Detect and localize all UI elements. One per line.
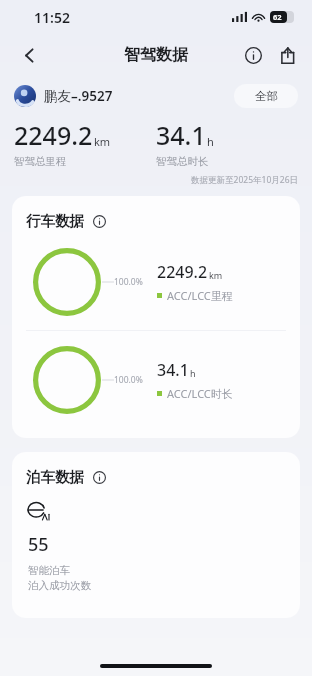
staticText: 11:52 xyxy=(34,8,70,27)
staticText: 55 xyxy=(28,532,49,557)
button[interactable]: 泊车数据 说明 xyxy=(89,467,109,487)
staticText: 2249.2 xyxy=(157,261,208,283)
staticText: 智驾总里程 xyxy=(14,155,67,168)
staticText: 智能泊车 xyxy=(28,564,70,577)
staticText: 智驾数据 xyxy=(124,45,188,65)
staticText: 数据更新至2025年10月26日 xyxy=(0,174,298,186)
staticText: 鹏友–.9527 xyxy=(44,87,113,105)
staticText: 2249.2 xyxy=(14,118,93,152)
button[interactable]: 全部 xyxy=(234,84,298,108)
staticText: h xyxy=(207,134,214,149)
staticText: ACC/LCC里程 xyxy=(167,288,233,303)
staticText: km xyxy=(94,134,111,149)
button[interactable]: Back xyxy=(10,36,48,74)
staticText: 行车数据 xyxy=(26,212,84,230)
staticText: 智驾总时长 xyxy=(156,155,209,168)
staticText: 100.0% xyxy=(114,276,143,288)
staticText: 泊车数据 xyxy=(26,468,84,486)
staticText: 34.1 xyxy=(157,359,189,381)
staticText: ACC/LCC时长 xyxy=(167,386,233,401)
button[interactable]: Share xyxy=(270,38,304,72)
staticText: 62 xyxy=(273,12,282,22)
staticText: 泊入成功次数 xyxy=(28,579,91,592)
staticText: h xyxy=(190,367,196,379)
staticText: 34.1 xyxy=(156,118,206,152)
button[interactable]: 行车数据 说明 xyxy=(89,211,109,231)
staticText: 全部 xyxy=(255,89,278,103)
staticText: 100.0% xyxy=(114,374,143,386)
staticText: km xyxy=(209,269,223,281)
button[interactable]: Info xyxy=(236,38,270,72)
